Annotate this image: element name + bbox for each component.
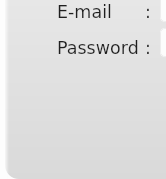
staticText: :	[145, 2, 151, 22]
button[interactable]	[160, 28, 166, 57]
button[interactable]	[160, 0, 166, 22]
staticText: E-mail	[57, 2, 112, 22]
staticText: :	[145, 38, 151, 58]
staticText: Password	[57, 38, 139, 58]
